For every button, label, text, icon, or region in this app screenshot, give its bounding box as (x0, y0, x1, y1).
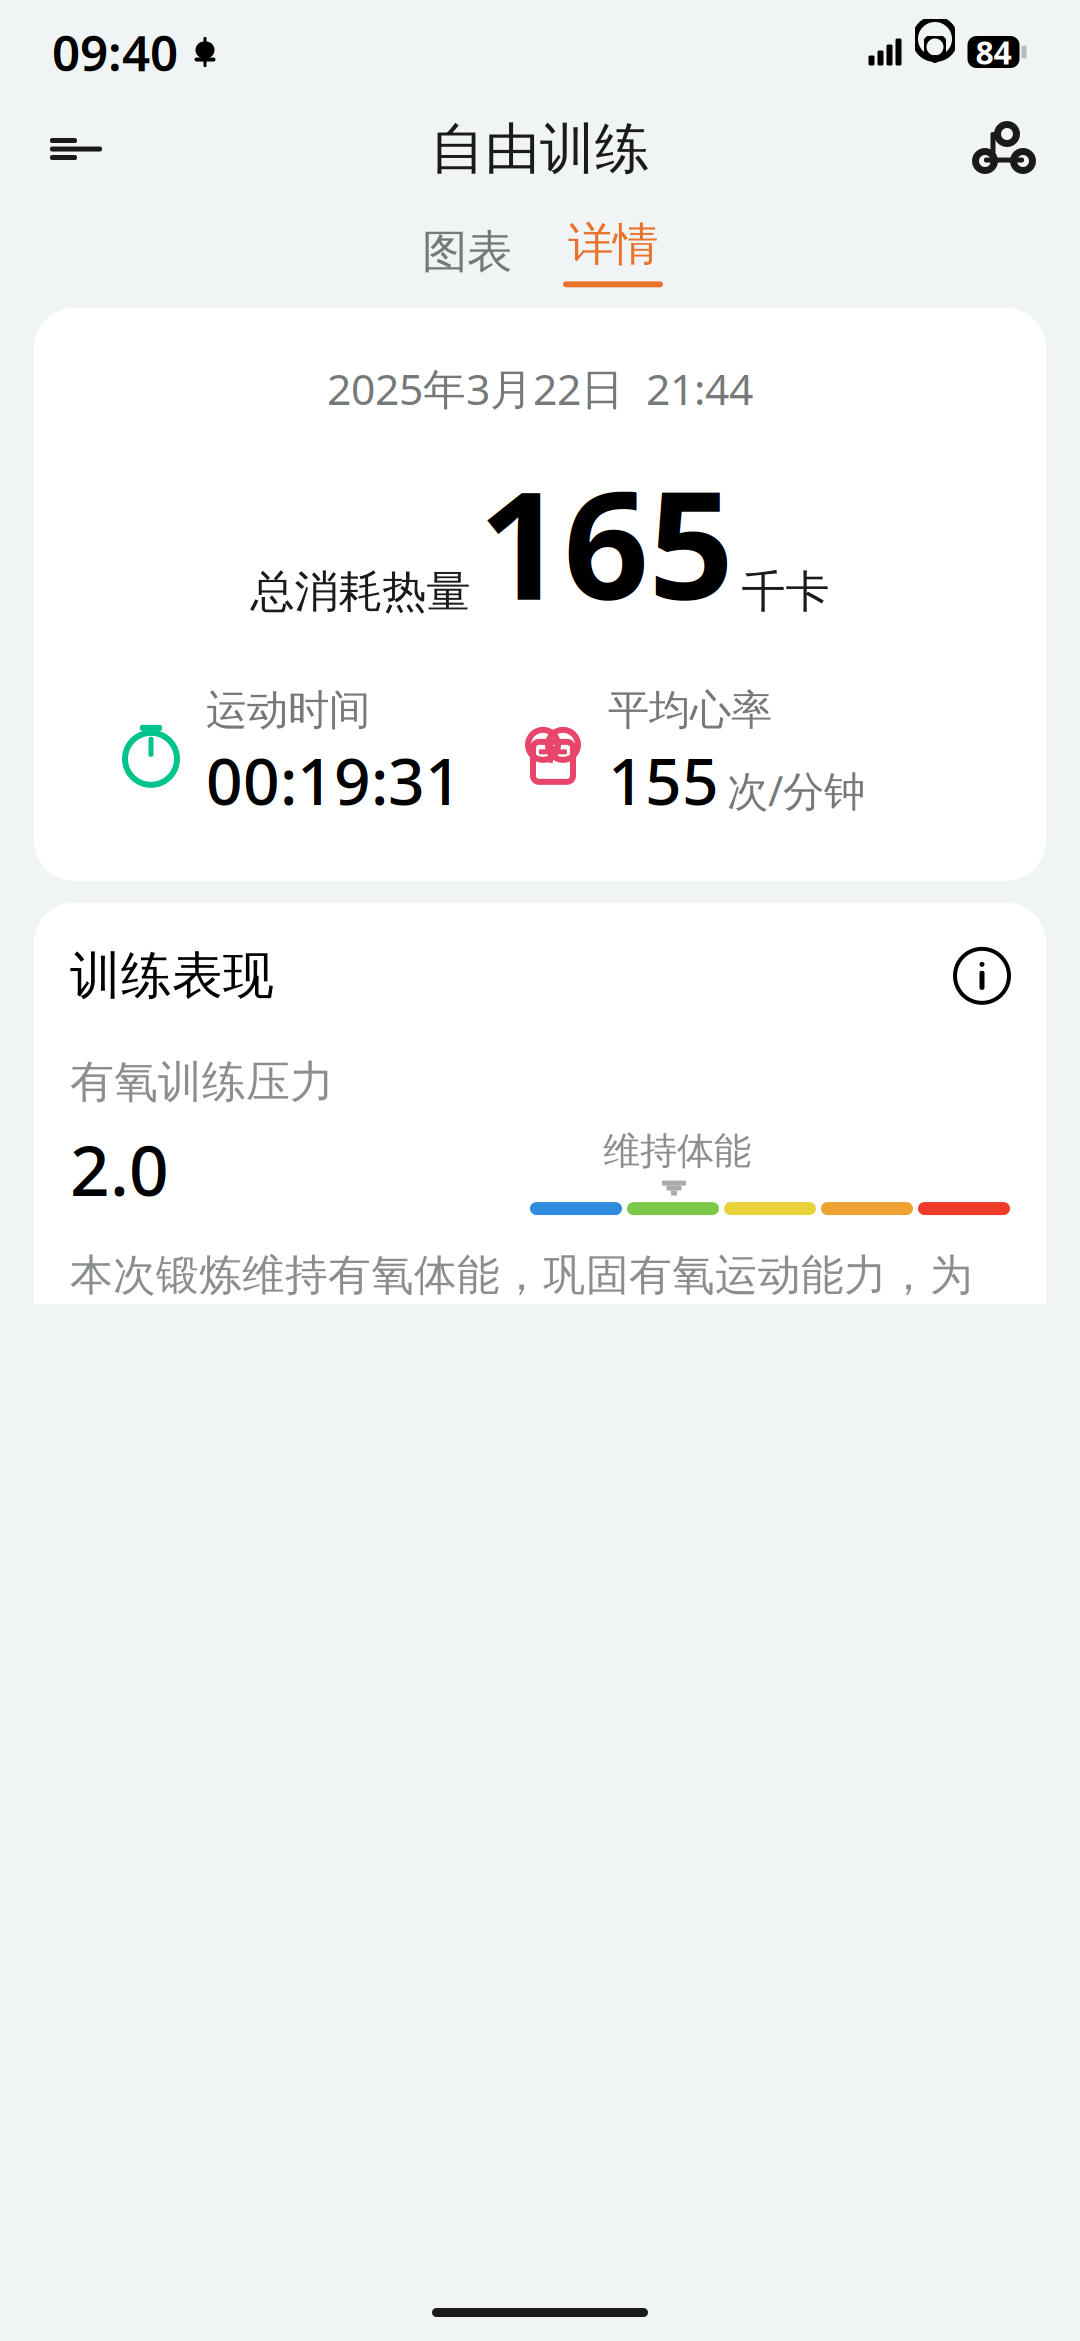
staticText: 详情 (568, 217, 658, 272)
staticText: 2.0 (70, 1123, 169, 1215)
staticText: 图表 (422, 224, 512, 280)
button[interactable]: 图表 (416, 214, 518, 290)
staticText: 有氧训练压力 (70, 1055, 334, 1109)
button[interactable]: 分享 (968, 113, 1040, 185)
button[interactable]: 返回 (40, 113, 112, 185)
staticText: 00:19:31 (206, 738, 462, 823)
staticText: 运动时间 (206, 685, 370, 736)
staticText: 总消耗热量 (250, 565, 470, 619)
staticText: 千卡 (741, 565, 829, 619)
staticText: 155 (608, 738, 719, 823)
staticText: 自由训练 (430, 115, 650, 182)
staticText: 84 (975, 31, 1011, 73)
staticText: 09:40 (52, 19, 178, 85)
button[interactable]: 详情 (562, 213, 664, 291)
staticText: 平均心率 (608, 685, 772, 736)
staticText: 维持体能 (603, 1128, 751, 1174)
staticText: 本次锻炼维持有氧体能，巩固有氧运动能力，为更高强度锻炼打基础。 (70, 1249, 973, 1354)
staticText: 次/分钟 (727, 763, 865, 818)
staticText: 165 (478, 443, 733, 641)
staticText: 训练表现 (70, 945, 274, 1007)
button[interactable]: 说明 (954, 948, 1010, 1004)
staticText: 2025年3月22日 21:44 (327, 360, 753, 417)
